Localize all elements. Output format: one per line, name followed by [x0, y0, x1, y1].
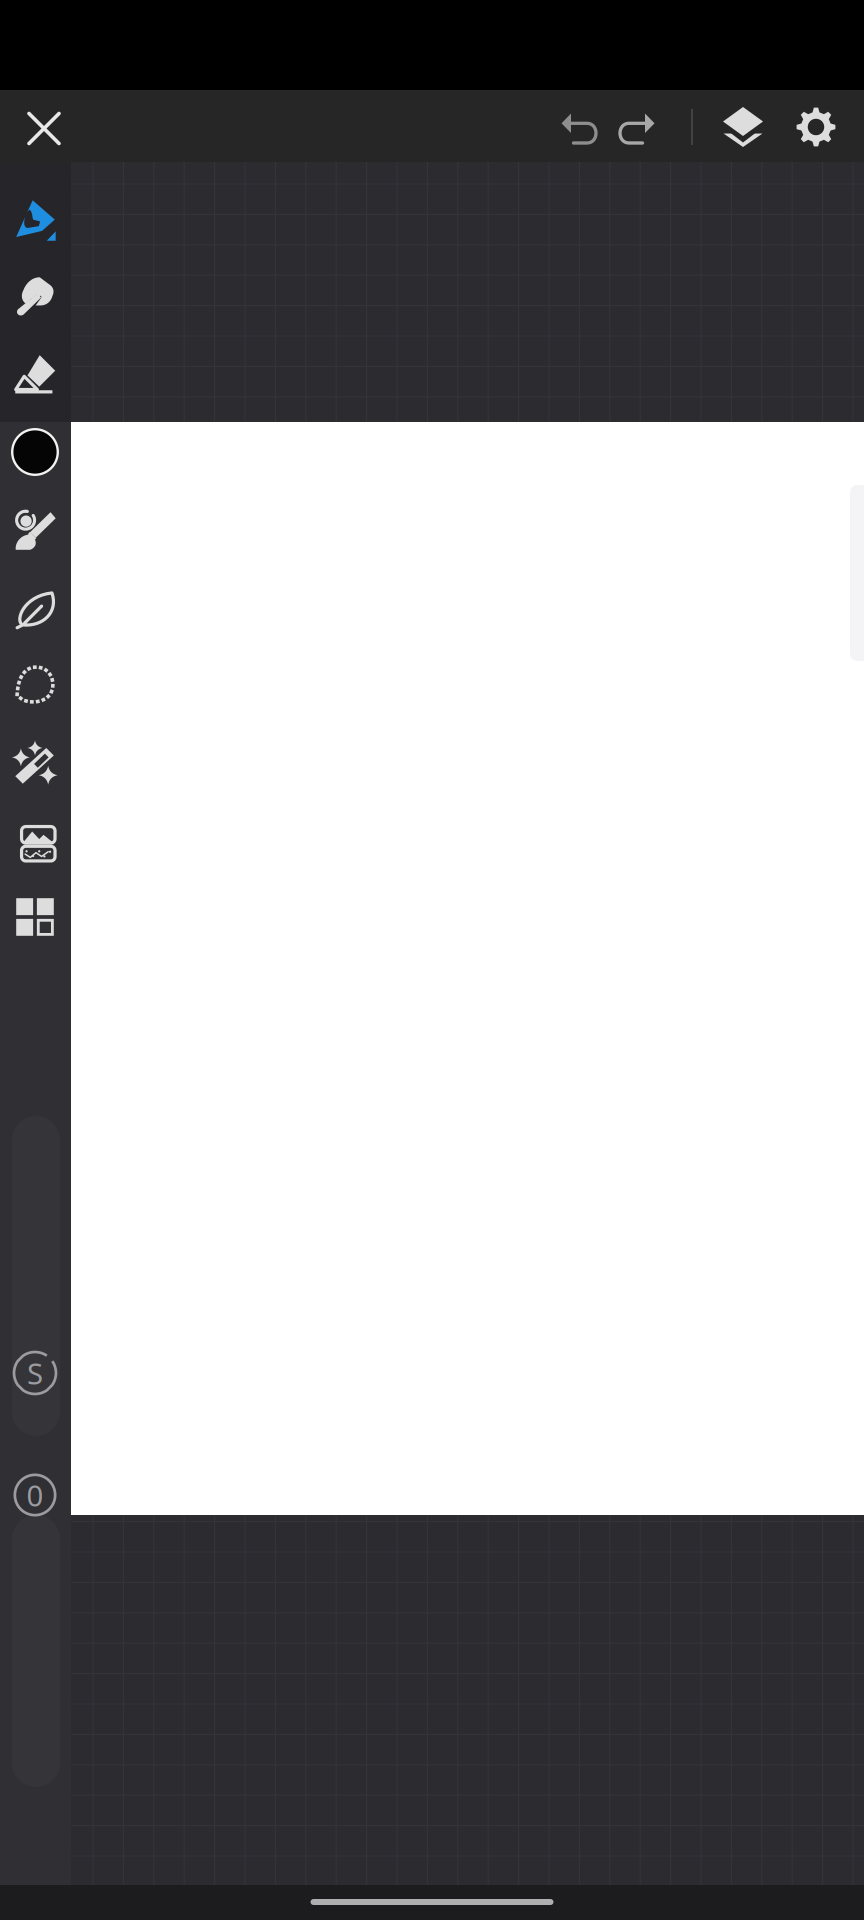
- button[interactable]: Textures: [11, 816, 59, 864]
- button[interactable]: Brush tool: [10, 506, 60, 556]
- button[interactable]: Redo: [617, 104, 663, 150]
- button[interactable]: Opacity: [13, 1473, 56, 1516]
- button[interactable]: Symmetry: [12, 1350, 57, 1395]
- button[interactable]: Layers: [717, 102, 769, 152]
- button[interactable]: Layers: [13, 895, 57, 939]
- button[interactable]: Selection tool: [11, 661, 59, 709]
- button[interactable]: Smudge tool: [10, 272, 60, 322]
- button[interactable]: Close: [25, 109, 63, 147]
- button[interactable]: Blend tool: [11, 584, 59, 632]
- button[interactable]: Settings: [794, 105, 838, 149]
- staticText: S: [27, 1353, 43, 1392]
- button[interactable]: Colour: [11, 428, 59, 476]
- button[interactable]: Marker tool: [9, 195, 61, 247]
- button[interactable]: Eraser tool: [10, 349, 60, 399]
- button[interactable]: Undo: [553, 104, 599, 150]
- staticText: 0: [26, 1475, 43, 1514]
- button[interactable]: Adjustments: [10, 738, 60, 788]
